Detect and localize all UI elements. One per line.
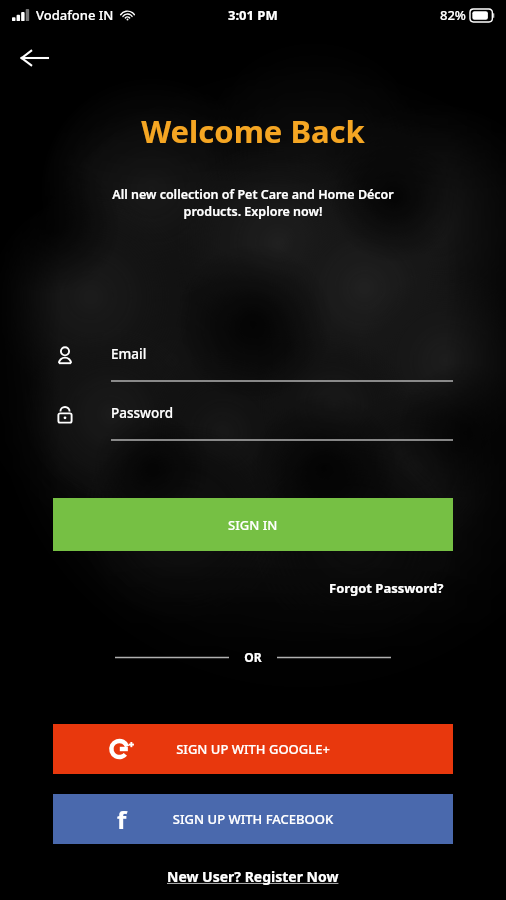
staticText: OR: [0, 649, 506, 665]
button[interactable]: Password: [53, 402, 453, 450]
staticText: SIGN UP WITH GOOGLE+: [53, 740, 453, 758]
staticText: New User? Register Now: [167, 867, 339, 886]
button[interactable]: Forgot Password?: [325, 576, 448, 600]
staticText: SIGN IN: [228, 516, 278, 534]
staticText: Forgot Password?: [329, 579, 444, 597]
button[interactable]: New User? Register Now: [161, 864, 345, 889]
staticText: f: [117, 803, 127, 836]
button[interactable]: Back: [12, 36, 56, 80]
staticText: Email: [111, 345, 147, 363]
button[interactable]: f: [53, 794, 453, 844]
staticText: Vodafone IN: [36, 6, 114, 24]
button[interactable]: Email: [53, 343, 453, 391]
button[interactable]: SIGN UP WITH GOOGLE+: [53, 724, 453, 774]
staticText: 3:01 PM: [228, 6, 278, 24]
staticText: SIGN UP WITH FACEBOOK: [53, 810, 453, 828]
staticText: Welcome Back: [0, 110, 506, 152]
staticText: Password: [111, 404, 174, 422]
button[interactable]: SIGN IN: [53, 498, 453, 551]
staticText: All new collection of Pet Care and Home …: [60, 186, 446, 220]
staticText: 82%: [440, 6, 466, 24]
